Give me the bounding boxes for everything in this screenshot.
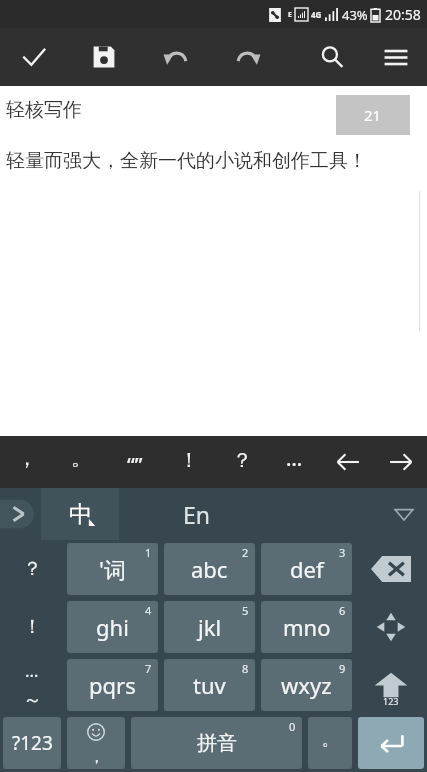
staticText: 2 <box>242 545 249 560</box>
button[interactable]: tuv <box>164 659 255 711</box>
staticText: En <box>183 499 211 530</box>
button[interactable]: Delete <box>358 543 424 595</box>
button[interactable]: Menu <box>365 28 427 86</box>
button[interactable]: pqrs <box>67 659 158 711</box>
staticText: “” <box>127 451 143 478</box>
staticText: ～ <box>23 688 42 712</box>
staticText: 。 <box>71 446 91 471</box>
button[interactable]: Expand <box>0 488 41 540</box>
staticText: pqrs <box>89 670 136 700</box>
staticText: ？ <box>23 557 42 581</box>
button[interactable]: ？ <box>0 540 64 598</box>
staticText: mno <box>283 612 331 642</box>
staticText: 。 <box>322 729 339 750</box>
button[interactable]: Hide keyboard <box>381 488 427 540</box>
button[interactable]: Move cursor right <box>374 436 427 488</box>
staticText: 拼音 <box>197 731 237 756</box>
staticText: tuv <box>193 670 226 700</box>
staticText: 中 <box>69 500 92 529</box>
staticText: 9 <box>339 661 346 676</box>
staticText: 0 <box>289 719 296 734</box>
staticText: 21 <box>364 105 382 125</box>
button[interactable]: … <box>268 436 321 488</box>
button[interactable]: 。 <box>308 717 352 769</box>
staticText: ？ <box>232 448 252 473</box>
staticText: 7 <box>145 661 152 676</box>
button[interactable]: Redo <box>212 28 284 86</box>
button[interactable]: ， <box>67 717 125 769</box>
button[interactable]: Shift <box>358 659 424 711</box>
staticText: 20:58 <box>385 5 421 24</box>
staticText: '词 <box>99 554 126 584</box>
button[interactable]: ！ <box>162 436 215 488</box>
button[interactable]: Search <box>299 28 365 86</box>
button[interactable]: '词 <box>67 543 158 595</box>
staticText: 1 <box>145 545 152 560</box>
button[interactable]: “” <box>108 436 162 488</box>
button[interactable]: … <box>0 656 64 714</box>
button[interactable]: mno <box>261 601 352 653</box>
button[interactable]: Done <box>0 28 68 86</box>
staticText: def <box>290 554 324 584</box>
button[interactable]: En <box>119 488 381 540</box>
staticText: 5 <box>242 603 249 618</box>
button[interactable]: Save <box>68 28 140 86</box>
button[interactable]: ， <box>0 436 54 488</box>
button[interactable]: Undo <box>140 28 212 86</box>
staticText: jkl <box>198 612 222 642</box>
button[interactable]: ？ <box>215 436 268 488</box>
button[interactable]: Move cursor left <box>321 436 374 488</box>
staticText: … <box>25 659 39 682</box>
staticText: ！ <box>179 448 199 473</box>
button[interactable]: 中 <box>41 488 119 540</box>
staticText: 轻核写作 <box>6 98 82 122</box>
button[interactable]: jkl <box>164 601 255 653</box>
button[interactable]: abc <box>164 543 255 595</box>
button[interactable]: wxyz <box>261 659 352 711</box>
button[interactable]: 。 <box>54 436 108 488</box>
staticText: 6 <box>339 603 346 618</box>
staticText: 轻量而强大，全新一代的小说和创作工具！ <box>6 149 367 173</box>
staticText: 8 <box>242 661 249 676</box>
staticText: 3 <box>339 545 346 560</box>
staticText: 123 <box>383 695 399 707</box>
staticText: ， <box>17 446 37 471</box>
button[interactable]: def <box>261 543 352 595</box>
staticText: 4 <box>145 603 152 618</box>
staticText: 43% <box>342 6 368 24</box>
staticText: E <box>288 10 292 20</box>
button[interactable]: ?123 <box>3 717 61 769</box>
staticText: ?123 <box>12 730 53 756</box>
staticText: … <box>286 445 303 472</box>
button[interactable]: ghi <box>67 601 158 653</box>
button[interactable]: ！ <box>0 598 64 656</box>
staticText: abc <box>191 554 228 584</box>
button[interactable]: 拼音 <box>131 717 302 769</box>
staticText: wxyz <box>281 670 332 700</box>
staticText: ！ <box>23 615 42 639</box>
button[interactable]: 21 <box>336 95 410 135</box>
staticText: 4G <box>311 9 322 20</box>
staticText: ， <box>89 748 104 767</box>
button[interactable]: Enter <box>358 717 424 769</box>
button[interactable]: Cursor pad <box>358 601 424 653</box>
staticText: ghi <box>96 612 129 642</box>
